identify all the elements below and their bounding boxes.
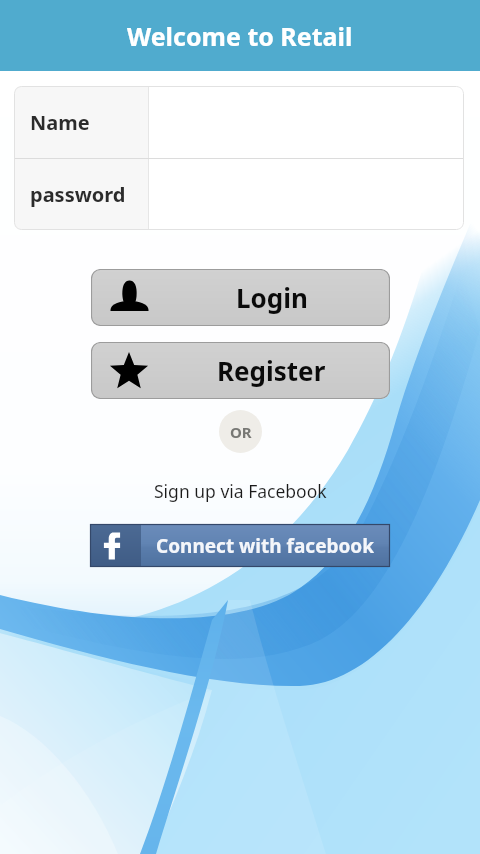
button[interactable] bbox=[149, 86, 464, 158]
staticText: Sign up via Facebook bbox=[154, 479, 327, 503]
staticText: OR bbox=[230, 422, 252, 442]
button[interactable]: Connect with facebook bbox=[90, 524, 390, 567]
button[interactable]: Name bbox=[14, 86, 148, 158]
staticText: Login bbox=[236, 280, 308, 315]
staticText: Connect with facebook bbox=[156, 533, 375, 559]
staticText: password bbox=[30, 181, 126, 208]
staticText: Welcome to Retail bbox=[127, 19, 353, 53]
staticText: Register bbox=[217, 353, 326, 388]
button[interactable]: OR bbox=[219, 410, 262, 453]
button[interactable]: Register bbox=[91, 342, 390, 399]
button[interactable]: password bbox=[14, 159, 148, 230]
staticText: Name bbox=[30, 109, 90, 136]
button[interactable]: Login bbox=[91, 269, 390, 326]
button[interactable] bbox=[149, 159, 464, 230]
